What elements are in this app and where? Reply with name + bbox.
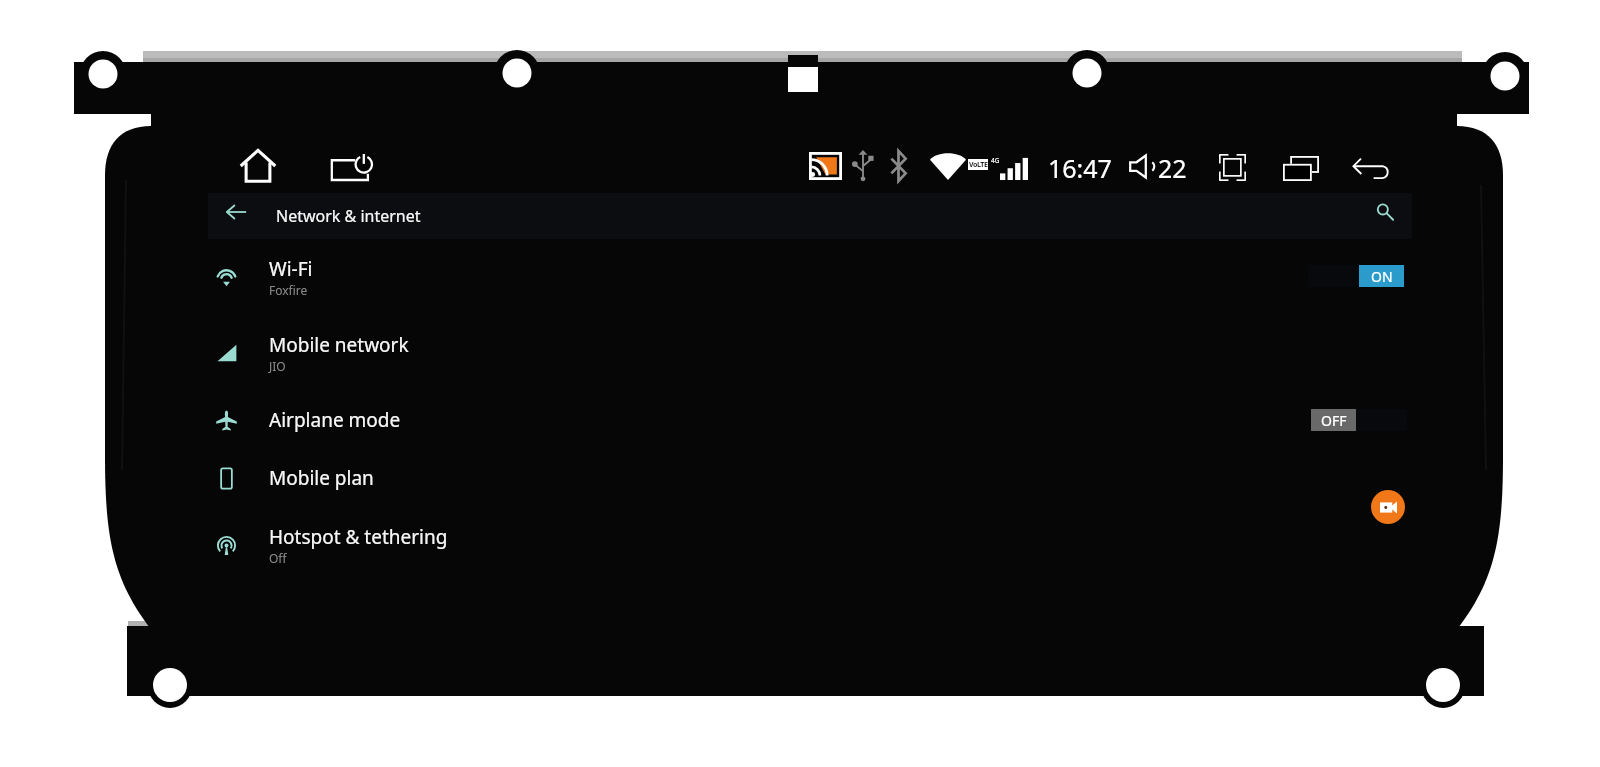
staticText: 16:47 — [1048, 151, 1112, 185]
staticText: 22 — [1158, 151, 1187, 185]
staticText: Mobile plan — [269, 465, 374, 491]
staticText: Wi-Fi — [269, 256, 313, 282]
staticText: ON — [1371, 267, 1393, 286]
staticText: OFF — [1321, 411, 1347, 430]
button[interactable]: Mobile plan — [208, 449, 1412, 507]
button[interactable]: Back — [214, 190, 258, 234]
button[interactable]: Recents — [1273, 146, 1329, 191]
button[interactable]: Screenshot — [1209, 144, 1256, 191]
button[interactable]: Airplane mode — [208, 391, 1412, 449]
button[interactable]: Switch off — [1311, 409, 1407, 431]
staticText: Airplane mode — [269, 407, 401, 433]
button[interactable]: Mobile network — [208, 315, 1412, 391]
staticText: 4G — [991, 156, 1000, 165]
staticText: Hotspot & tethering — [269, 524, 448, 550]
button[interactable]: Record screen — [1371, 490, 1405, 524]
button[interactable]: Switch on — [1308, 265, 1404, 287]
staticText: Mobile network — [269, 332, 409, 358]
button[interactable]: Home — [230, 139, 286, 193]
staticText: JIO — [269, 358, 286, 374]
staticText: Off — [269, 550, 287, 566]
staticText: Network & internet — [276, 205, 421, 227]
button[interactable]: Wi-Fi — [208, 239, 1412, 315]
staticText: Foxfire — [269, 282, 308, 298]
button[interactable]: Back — [1342, 147, 1398, 190]
staticText: VoLTE — [969, 160, 988, 170]
button[interactable]: Search — [1363, 190, 1407, 234]
button[interactable]: Screen off — [321, 144, 382, 190]
button[interactable]: Hotspot & tethering — [208, 507, 1412, 583]
